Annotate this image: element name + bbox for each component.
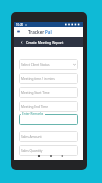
staticText: Enter Remarks xyxy=(22,112,44,116)
button[interactable]: Back xyxy=(59,153,65,159)
button[interactable]: Meeting End Time xyxy=(19,101,78,112)
button[interactable]: Meeting Start Time xyxy=(19,87,78,98)
staticText: Sales Amount xyxy=(21,135,42,139)
staticText: Select Client Status xyxy=(21,63,50,67)
staticText: 10:20 xyxy=(16,23,24,27)
button[interactable]: Sales Amount xyxy=(19,131,78,142)
staticText: Meeting time / in mins xyxy=(21,77,55,81)
button[interactable]: Sales Quantity xyxy=(19,145,78,156)
button[interactable]: Recent apps xyxy=(36,153,42,159)
staticText: Create Meeting Report xyxy=(26,40,64,45)
staticText: Meeting Start Time xyxy=(21,91,50,95)
staticText: Pal xyxy=(45,29,52,35)
staticText: Sales Quantity xyxy=(21,149,43,153)
button[interactable]: Select Client Status xyxy=(19,59,78,70)
button[interactable]: Back xyxy=(20,41,23,44)
button[interactable]: Meeting time / in mins xyxy=(19,73,78,84)
button[interactable]: Home xyxy=(48,153,54,159)
staticText: Meeting End Time xyxy=(21,105,49,109)
button[interactable] xyxy=(19,114,78,125)
button[interactable]: Open navigation menu xyxy=(17,30,20,33)
staticText: Tracker xyxy=(28,29,45,35)
